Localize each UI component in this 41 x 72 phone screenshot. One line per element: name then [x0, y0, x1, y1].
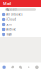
button[interactable]: Contacts [8, 62, 16, 72]
button[interactable]: Settings [33, 62, 41, 72]
button[interactable]: Alerts [25, 62, 33, 72]
staticText: Search [9, 8, 17, 11]
button[interactable]: Trash [0, 32, 41, 37]
button[interactable]: Mailboxes [0, 62, 8, 72]
staticText: Trash [6, 33, 12, 36]
button[interactable]: All Inboxes [0, 12, 41, 17]
staticText: Sent [6, 23, 12, 26]
staticText: Mail [3, 1, 11, 6]
staticText: Archive [6, 28, 16, 31]
button[interactable]: Search [16, 62, 25, 72]
button[interactable]: Search [0, 7, 41, 12]
button[interactable]: Sent [0, 22, 41, 27]
staticText: iCloud [6, 18, 16, 21]
button[interactable]: iCloud [0, 17, 41, 22]
staticText: All Inboxes [6, 13, 22, 16]
button[interactable]: Archive [0, 27, 41, 32]
